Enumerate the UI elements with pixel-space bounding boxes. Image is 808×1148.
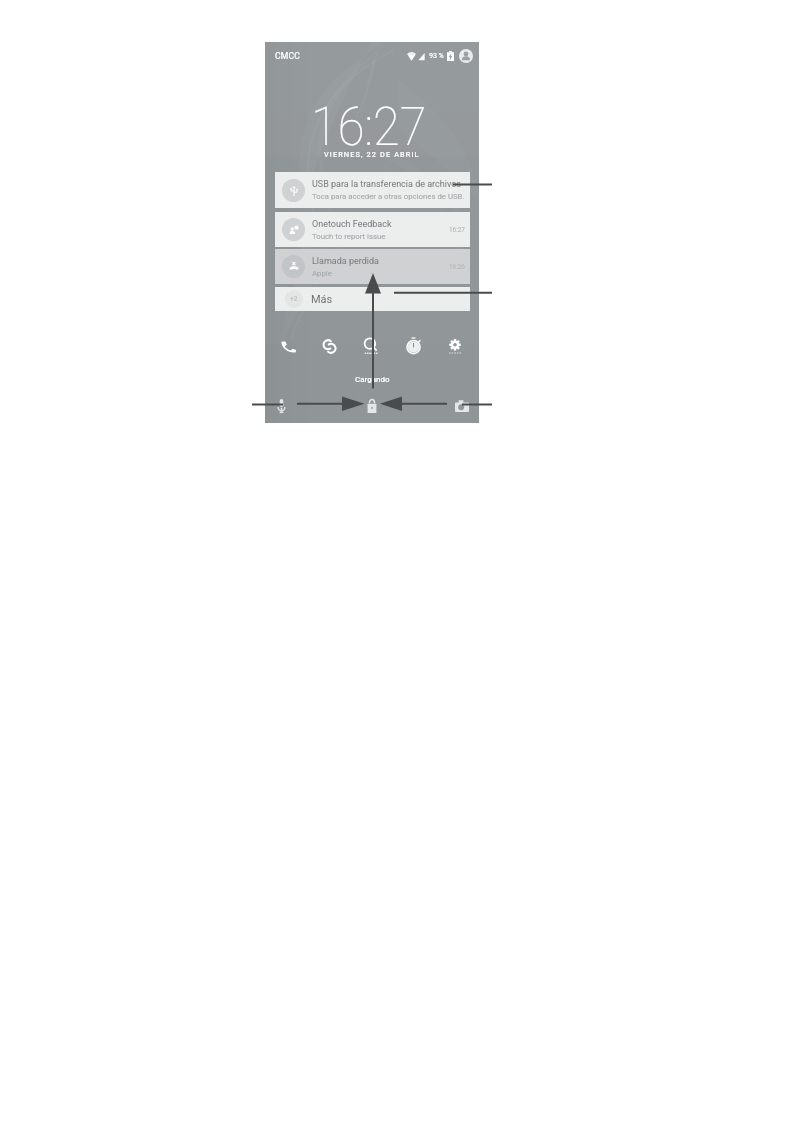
staticText: Cargando [355, 375, 390, 384]
staticText: VIERNES, 22 DE ABRIL [324, 150, 420, 159]
staticText: Apple [312, 269, 332, 278]
staticText: Onetouch Feedback [312, 219, 392, 230]
staticText: Toca para acceder a otras opciones de US… [312, 192, 465, 201]
staticText: 16:27 [449, 226, 465, 234]
button[interactable]: USB para la transferencia de archivos [275, 172, 470, 208]
button[interactable]: +2 [275, 287, 470, 311]
button[interactable]: Voice assist [273, 398, 289, 414]
button[interactable]: Camera [454, 398, 470, 414]
button[interactable]: User account [459, 49, 473, 63]
button[interactable]: Shazam [309, 336, 350, 356]
staticText: Más [311, 293, 333, 306]
button[interactable]: Settings [434, 336, 476, 356]
button[interactable]: Llamada perdida [275, 249, 470, 284]
staticText: +2 [290, 295, 298, 303]
staticText: CMCC [275, 51, 301, 61]
staticText: 16:26 [449, 263, 465, 271]
button[interactable]: Locked [364, 398, 380, 414]
staticText: 93 % [429, 52, 444, 60]
button[interactable]: Timer [392, 336, 434, 356]
button[interactable]: Phone [268, 336, 309, 356]
staticText: Llamada perdida [312, 256, 379, 267]
button[interactable]: Yandex search [350, 336, 392, 356]
staticText: 16:27 [311, 96, 427, 158]
staticText: USB para la transferencia de archivos [312, 179, 462, 190]
button[interactable]: Onetouch Feedback [275, 212, 470, 247]
staticText: Touch to report issue [312, 232, 386, 241]
